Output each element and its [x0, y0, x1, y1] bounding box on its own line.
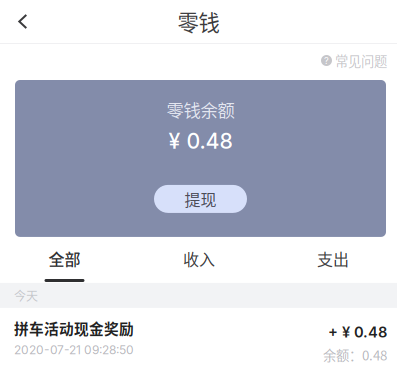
staticText: 全部: [48, 247, 80, 270]
button[interactable]: 全部: [0, 243, 129, 283]
button[interactable]: ?: [321, 44, 397, 77]
staticText: 支出: [317, 247, 349, 270]
staticText: 今天: [14, 287, 38, 304]
button[interactable]: 拼车活动现金奖励: [0, 308, 397, 368]
staticText: ¥ 0.48: [168, 128, 232, 154]
staticText: ?: [324, 55, 329, 66]
staticText: 常见问题: [335, 51, 387, 70]
staticText: + ¥ 0.48: [328, 323, 387, 341]
staticText: 零钱余额: [166, 97, 234, 122]
staticText: 2020-07-21 09:28:50: [14, 343, 134, 357]
staticText: 余额：0.48: [323, 345, 387, 364]
staticText: 收入: [183, 247, 215, 270]
button[interactable]: 提现: [154, 185, 247, 213]
staticText: 拼车活动现金奖励: [14, 317, 134, 339]
button[interactable]: 收入: [129, 243, 269, 283]
staticText: 提现: [184, 187, 216, 210]
staticText: 零钱: [177, 6, 219, 37]
button[interactable]: Back: [0, 0, 62, 43]
button[interactable]: 支出: [269, 243, 397, 283]
